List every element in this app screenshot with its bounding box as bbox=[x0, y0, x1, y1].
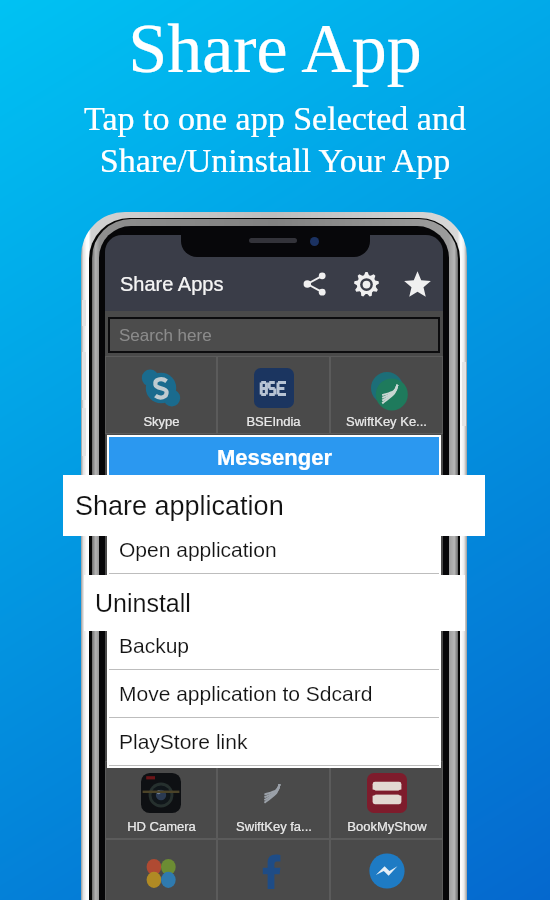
button[interactable]: SwiftKey fa... bbox=[217, 761, 330, 839]
staticText: Share Apps bbox=[120, 273, 224, 295]
button[interactable]: HD Camera bbox=[105, 761, 217, 839]
staticText: SwiftKey Ke... bbox=[346, 414, 427, 429]
button[interactable] bbox=[105, 839, 217, 900]
button[interactable]: Backup bbox=[109, 622, 439, 670]
staticText: Tap to one app Selected and Share/Uninst… bbox=[84, 100, 466, 180]
button[interactable]: Search here bbox=[110, 319, 438, 351]
staticText: Open application bbox=[119, 538, 277, 561]
staticText: BookMyShow bbox=[347, 819, 427, 834]
staticText: Share App bbox=[128, 10, 422, 88]
staticText: Search here bbox=[119, 326, 212, 345]
button[interactable]: BSEIndia bbox=[217, 356, 330, 434]
staticText: Uninstall bbox=[95, 589, 191, 617]
staticText: Skype bbox=[143, 414, 180, 429]
staticText: HD Camera bbox=[127, 819, 196, 834]
button[interactable]: Share application bbox=[63, 475, 485, 536]
staticText: SwiftKey fa... bbox=[236, 819, 312, 834]
staticText: Share application bbox=[119, 490, 282, 513]
button[interactable]: SwiftKey Ke... bbox=[330, 356, 443, 434]
staticText: Backup bbox=[119, 634, 190, 657]
button[interactable] bbox=[217, 839, 330, 900]
button[interactable]: Share application bbox=[109, 478, 439, 526]
button[interactable]: PlayStore link bbox=[109, 718, 439, 766]
staticText: BSEIndia bbox=[246, 414, 301, 429]
button[interactable]: Uninstall bbox=[84, 575, 465, 631]
button[interactable]: Share bbox=[294, 263, 336, 305]
staticText: Move application to Sdcard bbox=[119, 682, 373, 705]
button[interactable]: BookMyShow bbox=[330, 761, 443, 839]
button[interactable]: Messenger bbox=[109, 437, 439, 478]
button[interactable]: Favourites bbox=[396, 263, 438, 305]
button[interactable]: Open application bbox=[109, 526, 439, 574]
button[interactable]: Settings bbox=[345, 263, 387, 305]
staticText: Messenger bbox=[217, 445, 332, 470]
button[interactable] bbox=[330, 839, 443, 900]
button[interactable]: Move application to Sdcard bbox=[109, 670, 439, 718]
button[interactable]: Share Apps bbox=[105, 273, 232, 295]
staticText: PlayStore link bbox=[119, 730, 248, 753]
button[interactable]: Skype bbox=[105, 356, 217, 434]
staticText: Uninstall bbox=[119, 586, 200, 609]
button[interactable]: Uninstall bbox=[109, 574, 439, 622]
staticText: Share application bbox=[75, 491, 284, 521]
